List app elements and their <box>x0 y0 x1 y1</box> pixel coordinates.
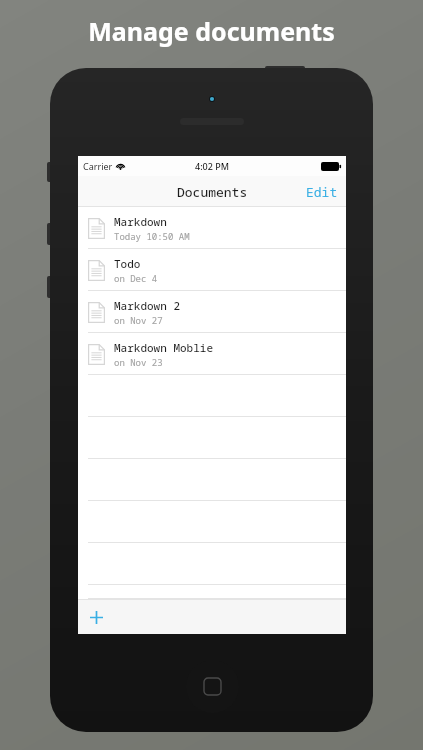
button[interactable]: Markdown <box>78 207 346 249</box>
button[interactable]: Markdown Moblie <box>78 333 346 375</box>
button[interactable]: Add document <box>82 603 110 631</box>
staticText: Todo <box>114 256 141 271</box>
staticText: Markdown 2 <box>114 298 180 313</box>
staticText: on Nov 23 <box>114 356 163 368</box>
staticText: Edit <box>306 183 338 201</box>
staticText: Documents <box>177 183 248 201</box>
staticText: Today 10:50 AM <box>114 230 190 242</box>
button[interactable]: Markdown 2 <box>78 291 346 333</box>
staticText: on Dec 4 <box>114 272 158 284</box>
staticText: on Nov 27 <box>114 314 163 326</box>
staticText: Markdown <box>114 214 167 229</box>
button[interactable]: Edit <box>298 179 346 205</box>
button[interactable]: Todo <box>78 249 346 291</box>
staticText: 4:02 PM <box>195 160 229 172</box>
staticText: Manage documents <box>0 14 423 48</box>
staticText: Markdown Moblie <box>114 340 213 355</box>
staticText: Carrier <box>83 160 113 172</box>
